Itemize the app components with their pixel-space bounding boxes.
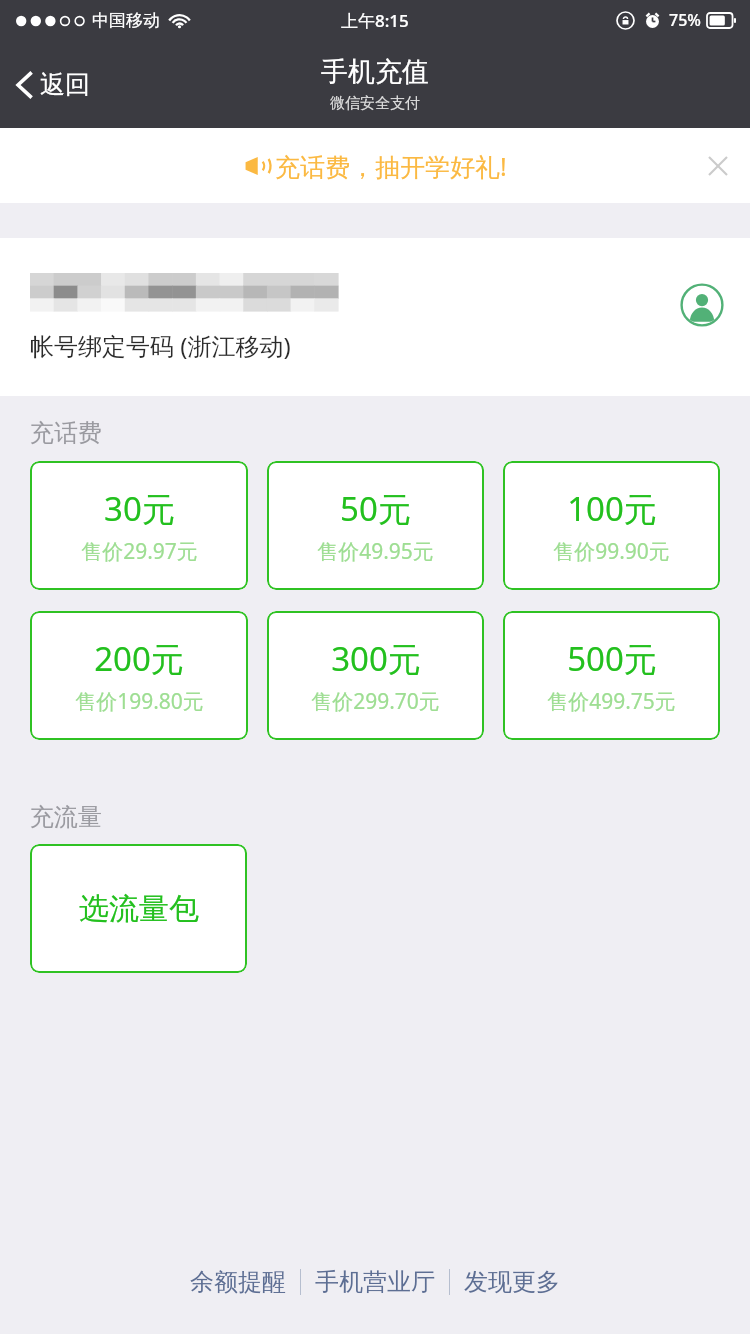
button[interactable]: 充话费，抽开学好礼! [0, 128, 750, 203]
button[interactable]: 余额提醒 [176, 1259, 300, 1305]
staticText: 中国移动 [92, 10, 160, 31]
button[interactable]: 关闭 [694, 142, 742, 190]
button[interactable]: 选流量包 [30, 844, 247, 973]
staticText: 微信安全支付 [330, 94, 420, 113]
staticText: 30元 [104, 486, 175, 531]
button[interactable]: 选择联系人 [674, 277, 730, 333]
staticText: 200元 [94, 636, 184, 681]
button[interactable]: 500元 [503, 611, 720, 740]
staticText: 50元 [340, 486, 411, 531]
button[interactable]: 返回 [0, 59, 110, 110]
staticText: 75% [669, 9, 701, 31]
button[interactable]: 100元 [503, 461, 720, 590]
staticText: 余额提醒 [190, 1267, 286, 1297]
button[interactable]: 帐号绑定号码 (浙江移动) [0, 238, 750, 396]
staticText: 上午8:15 [341, 9, 409, 32]
button[interactable]: 300元 [267, 611, 484, 740]
staticText: 发现更多 [464, 1267, 560, 1297]
button[interactable]: 手机营业厅 [301, 1259, 449, 1305]
staticText: 充流量 [30, 802, 102, 832]
staticText: 售价49.95元 [317, 537, 434, 566]
staticText: 返回 [40, 69, 90, 100]
staticText: 选流量包 [79, 890, 199, 928]
button[interactable]: 200元 [30, 611, 248, 740]
staticText: 售价299.70元 [311, 687, 440, 716]
staticText: 手机充值 [321, 55, 429, 89]
staticText: 帐号绑定号码 (浙江移动) [30, 329, 291, 362]
staticText: 售价499.75元 [547, 687, 676, 716]
staticText: 100元 [567, 486, 657, 531]
staticText: 售价29.97元 [81, 537, 198, 566]
button[interactable]: 发现更多 [450, 1259, 574, 1305]
staticText: 售价99.90元 [553, 537, 670, 566]
staticText: 500元 [567, 636, 657, 681]
staticText: 充话费 [30, 418, 102, 448]
button[interactable]: 50元 [267, 461, 484, 590]
staticText: 售价199.80元 [75, 687, 204, 716]
button[interactable]: 30元 [30, 461, 248, 590]
staticText: 手机营业厅 [315, 1267, 435, 1297]
staticText: 充话费，抽开学好礼! [275, 149, 507, 183]
staticText: 300元 [331, 636, 421, 681]
